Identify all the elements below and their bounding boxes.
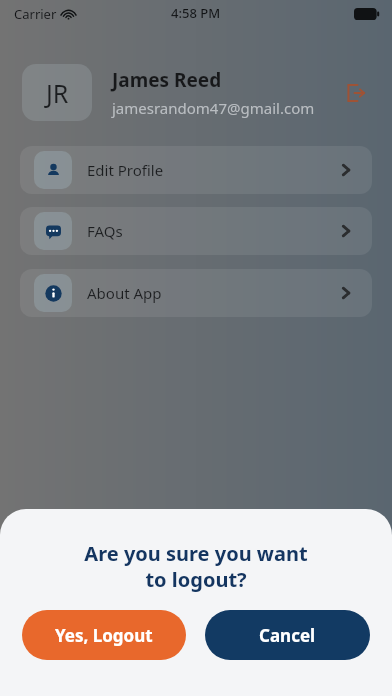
button[interactable]: Yes, Logout — [22, 610, 186, 660]
staticText: jamesrandom47@gmail.com — [112, 98, 315, 118]
staticText: Carrier — [14, 5, 57, 23]
staticText: Yes, Logout — [55, 624, 153, 647]
staticText: JR — [46, 76, 69, 110]
staticText: About App — [87, 283, 162, 303]
staticText: James Reed — [112, 67, 222, 93]
staticText: Are you sure you want to logout? — [84, 540, 308, 592]
button[interactable]: Edit Profile — [20, 146, 372, 194]
staticText: Edit Profile — [87, 160, 164, 180]
staticText: FAQs — [87, 221, 123, 241]
button[interactable]: About App — [20, 269, 372, 317]
button[interactable]: Logout — [340, 77, 372, 109]
staticText: Cancel — [259, 624, 316, 647]
button[interactable]: Cancel — [205, 610, 370, 660]
button[interactable]: FAQs — [20, 207, 372, 255]
staticText: 4:58 PM — [171, 4, 221, 22]
